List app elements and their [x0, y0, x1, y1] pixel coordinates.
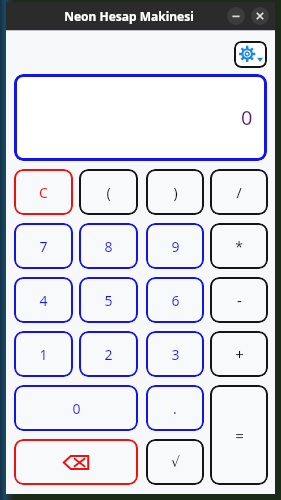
button[interactable]: 6: [146, 277, 204, 323]
staticText: -: [237, 290, 242, 310]
staticText: 5: [104, 291, 113, 310]
button[interactable]: 4: [14, 277, 73, 323]
staticText: =: [235, 425, 244, 445]
button[interactable]: √: [146, 439, 204, 485]
staticText: ): [173, 183, 178, 202]
button[interactable]: Close: [251, 7, 269, 25]
button[interactable]: -: [210, 277, 268, 323]
staticText: 2: [104, 345, 113, 364]
staticText: 4: [39, 291, 48, 310]
button[interactable]: 1: [14, 331, 73, 377]
button[interactable]: .: [146, 385, 204, 431]
button[interactable]: ): [146, 169, 204, 215]
staticText: √: [171, 454, 180, 470]
button[interactable]: /: [210, 169, 268, 215]
staticText: 3: [171, 345, 180, 364]
button[interactable]: 2: [79, 331, 138, 377]
staticText: Neon Hesap Makinesi: [64, 8, 194, 24]
button[interactable]: Backspace: [14, 439, 138, 485]
button[interactable]: 5: [79, 277, 138, 323]
button[interactable]: 0: [14, 74, 267, 161]
staticText: *: [235, 237, 243, 256]
button[interactable]: *: [210, 223, 268, 269]
button[interactable]: (: [79, 169, 138, 215]
button[interactable]: 8: [79, 223, 138, 269]
button[interactable]: 3: [146, 331, 204, 377]
staticText: /: [236, 183, 242, 202]
staticText: (: [106, 183, 111, 202]
staticText: 8: [104, 237, 113, 256]
button[interactable]: 9: [146, 223, 204, 269]
button[interactable]: C: [14, 169, 73, 215]
staticText: 7: [39, 237, 48, 256]
staticText: +: [235, 344, 244, 364]
staticText: 9: [171, 237, 180, 256]
button[interactable]: =: [210, 385, 268, 485]
button[interactable]: Settings: [234, 41, 267, 68]
staticText: 0: [72, 399, 81, 418]
staticText: .: [173, 399, 177, 418]
button[interactable]: Minimize: [227, 7, 245, 25]
staticText: 6: [171, 291, 180, 310]
staticText: 0: [241, 104, 253, 131]
staticText: 1: [39, 345, 48, 364]
button[interactable]: 0: [14, 385, 138, 431]
staticText: C: [39, 183, 48, 202]
button[interactable]: 7: [14, 223, 73, 269]
button[interactable]: +: [210, 331, 268, 377]
